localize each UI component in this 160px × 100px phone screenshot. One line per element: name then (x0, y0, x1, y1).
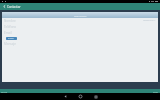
button[interactable]: Salir (153, 90, 158, 93)
button[interactable]: Inicio (1, 90, 8, 93)
button[interactable]: Enviar (6, 37, 17, 40)
button[interactable]: Home (73, 93, 88, 100)
staticText: Contactar (7, 5, 21, 9)
button[interactable]: Obligatorio * (143, 19, 156, 22)
staticText: Nombre (4, 19, 16, 23)
button[interactable]: Back (58, 93, 73, 100)
staticText: Email (4, 31, 12, 35)
button[interactable]: Recent apps (88, 93, 103, 100)
staticText: Enviar (8, 37, 15, 40)
staticText: CONTACTO (74, 14, 87, 17)
staticText: Teléfono (4, 25, 17, 29)
button[interactable]: Navigate up (0, 3, 8, 10)
staticText: Mensaje (4, 42, 16, 46)
